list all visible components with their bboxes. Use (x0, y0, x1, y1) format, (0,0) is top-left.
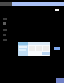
button[interactable] (3, 32, 13, 37)
button[interactable] (3, 21, 13, 26)
button[interactable] (18, 42, 50, 56)
button[interactable] (3, 27, 13, 32)
button[interactable] (3, 37, 13, 42)
button[interactable] (3, 16, 13, 21)
button[interactable] (0, 2, 64, 6)
